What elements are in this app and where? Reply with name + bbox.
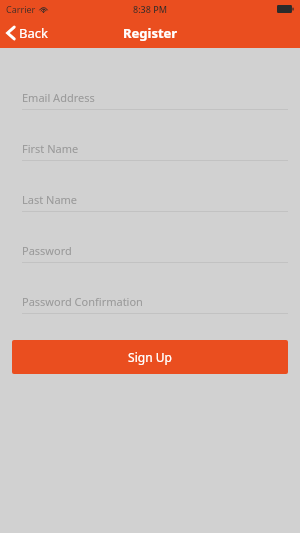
button[interactable]: Sign Up <box>12 340 288 374</box>
staticText: Register <box>123 24 178 42</box>
staticText: Carrier <box>6 3 36 15</box>
staticText: 8:38 PM <box>133 3 167 15</box>
button[interactable]: Email Address <box>0 85 300 110</box>
staticText: Email Address <box>22 90 95 105</box>
button[interactable]: Back <box>0 18 58 48</box>
staticText: Password <box>22 243 72 258</box>
staticText: First Name <box>22 141 79 156</box>
button[interactable]: Password Confirmation <box>0 289 300 314</box>
button[interactable]: First Name <box>0 136 300 161</box>
staticText: Back <box>19 24 48 42</box>
staticText: Password Confirmation <box>22 294 143 309</box>
button[interactable]: Password <box>0 238 300 263</box>
staticText: Last Name <box>22 192 78 207</box>
staticText: Sign Up <box>128 349 172 365</box>
button[interactable]: Last Name <box>0 187 300 212</box>
